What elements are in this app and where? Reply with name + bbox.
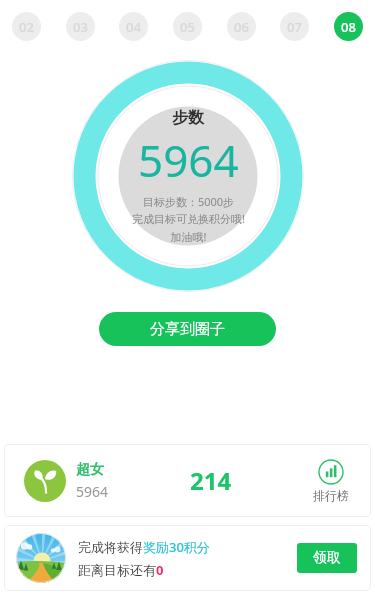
button[interactable]: 分享到圈子: [99, 312, 276, 346]
button[interactable]: 06: [227, 12, 256, 41]
staticText: 领取: [313, 549, 341, 567]
staticText: 03: [73, 18, 88, 36]
button[interactable]: 02: [12, 12, 41, 41]
staticText: 214: [190, 464, 232, 497]
staticText: 排行榜: [313, 488, 349, 503]
staticText: 超女: [76, 461, 104, 479]
staticText: 完成将获得奖励30积分: [78, 538, 210, 556]
staticText: 步数: [172, 108, 204, 128]
button[interactable]: 04: [119, 12, 148, 41]
staticText: 07: [287, 18, 302, 36]
button[interactable]: 领取: [297, 543, 357, 573]
button[interactable]: 08: [334, 12, 363, 41]
staticText: 05: [180, 18, 195, 36]
staticText: 5964: [76, 482, 109, 501]
staticText: 5964: [138, 130, 239, 190]
button[interactable]: 超女: [24, 460, 109, 502]
button[interactable]: 05: [173, 12, 202, 41]
staticText: 06: [234, 18, 249, 36]
staticText: 02: [19, 18, 34, 36]
staticText: 距离目标还有0: [78, 561, 164, 579]
staticText: 04: [126, 18, 141, 36]
button[interactable]: 03: [66, 12, 95, 41]
staticText: 分享到圈子: [150, 320, 225, 339]
button[interactable]: 07: [280, 12, 309, 41]
button[interactable]: 排行榜: [313, 459, 349, 503]
staticText: 08: [341, 18, 356, 36]
staticText: 目标步数：5000步 完成目标可兑换积分哦! 加油哦!: [132, 194, 245, 245]
